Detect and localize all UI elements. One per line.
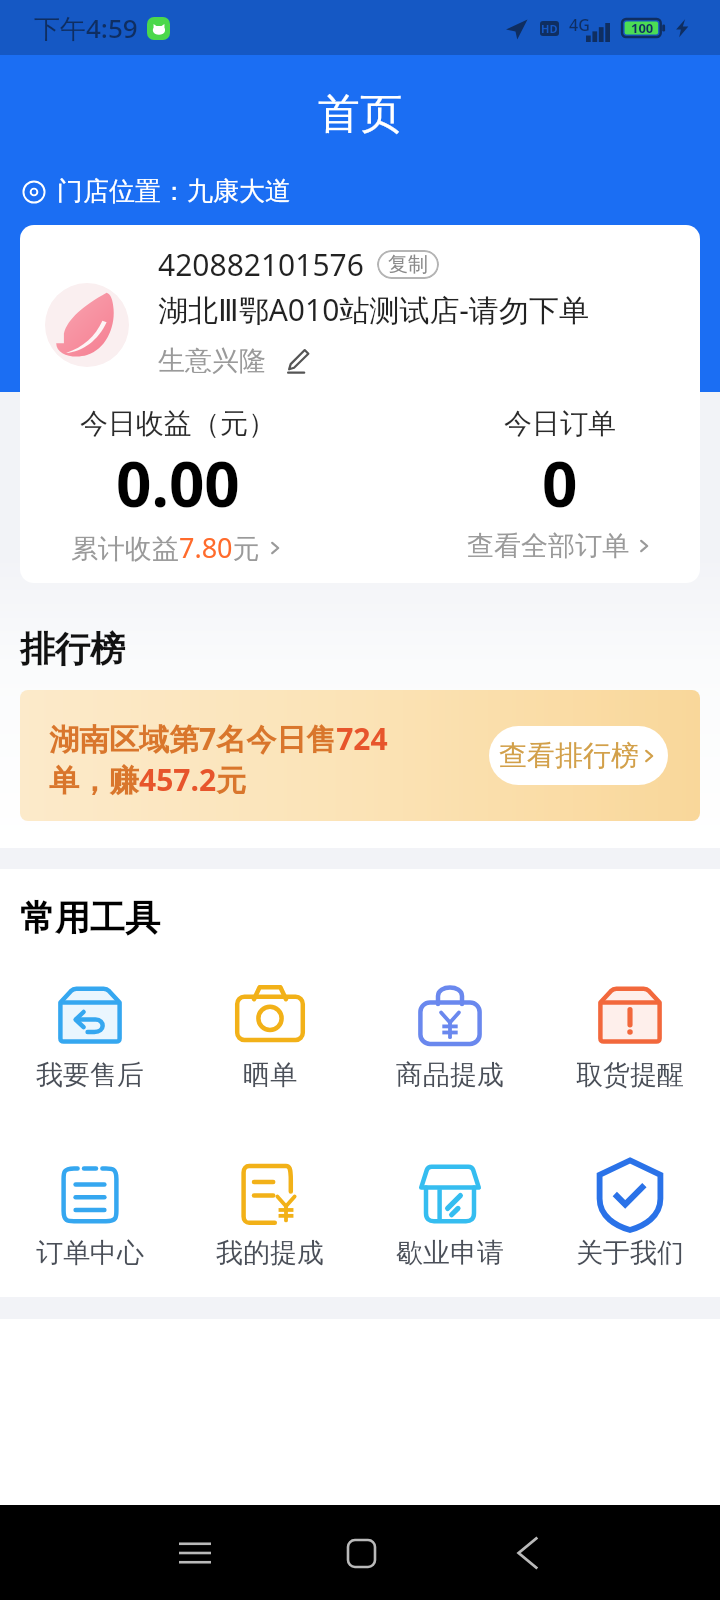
button[interactable]: 查看排行榜 [489,726,668,785]
staticText: 我要售后 [36,1058,144,1092]
button[interactable]: 复制 [377,250,439,279]
button[interactable]: 关于我们 [540,1154,720,1270]
button[interactable]: 取货提醒 [540,976,720,1092]
staticText: 歇业申请 [396,1236,504,1270]
button[interactable]: Edit store name [286,348,312,374]
button[interactable]: 我要售后 [0,976,180,1092]
staticText: 生意兴隆 [158,344,266,378]
staticText: 查看全部订单 [467,529,629,563]
staticText: 取货提醒 [576,1058,684,1092]
staticText: 今日订单 [504,406,616,441]
staticText: 门店位置：九康大道 [57,175,291,208]
staticText: 复制 [388,252,428,277]
button[interactable]: Home [326,1518,396,1588]
staticText: 常用工具 [20,896,160,940]
staticText: 排行榜 [20,627,125,671]
staticText: 关于我们 [576,1236,684,1270]
staticText: 订单中心 [36,1236,144,1270]
staticText: 查看排行榜 [499,738,639,773]
staticText: 累计收益7.80元 [71,529,260,566]
staticText: 0 [542,441,578,525]
staticText: 今日收益（元） [80,406,276,441]
staticText: 商品提成 [396,1058,504,1092]
staticText: HD [541,21,558,36]
button[interactable]: 湖南区域第7名今日售724 单，赚457.2元 [20,690,700,821]
button[interactable]: Back [492,1518,562,1588]
staticText: 420882101576 [158,244,364,285]
staticText: 下午4:59 [34,10,138,46]
staticText: 湖南区域第7名今日售724 单，赚457.2元 [49,718,449,800]
button[interactable]: 歇业申请 [360,1154,540,1270]
button[interactable]: 商品提成 [360,976,540,1092]
staticText: 4G [569,14,590,36]
button[interactable]: 订单中心 [0,1154,180,1270]
staticText: 首页 [318,88,402,141]
staticText: 0.00 [116,441,240,525]
button[interactable]: 晒单 [180,976,360,1092]
staticText: 100 [631,19,654,37]
button[interactable]: 今日收益（元） [28,406,328,566]
staticText: 湖北Ⅲ鄂A010站测试店-请勿下单 [158,289,589,330]
staticText: 晒单 [243,1058,297,1092]
button[interactable]: 我的提成 [180,1154,360,1270]
button[interactable]: 门店位置：九康大道 [22,175,291,208]
staticText: 我的提成 [216,1236,324,1270]
button[interactable]: Recent apps [160,1518,230,1588]
button[interactable]: 今日订单 [410,406,700,563]
